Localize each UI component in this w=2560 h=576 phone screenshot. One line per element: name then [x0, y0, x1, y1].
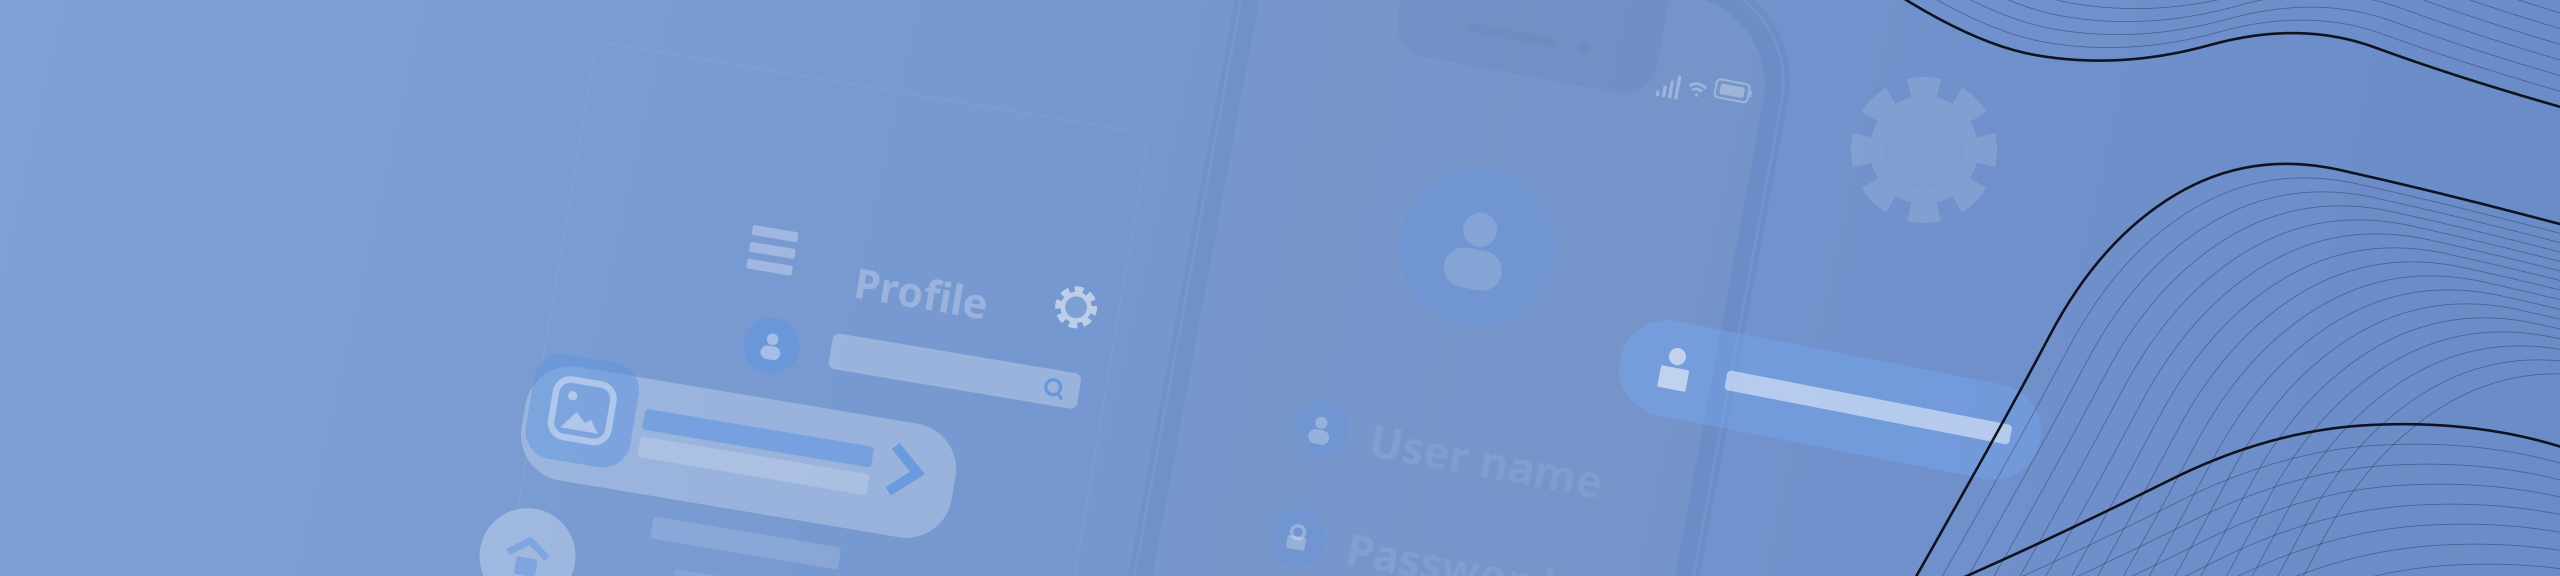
staticText: Profile — [834, 247, 969, 301]
staticText: Password — [1340, 531, 1550, 576]
staticText: User name — [1343, 420, 1579, 478]
